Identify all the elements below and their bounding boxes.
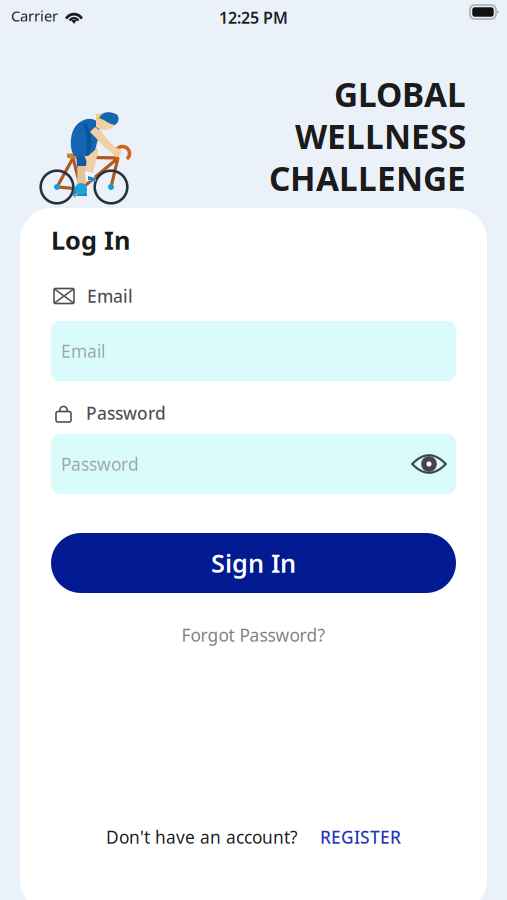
staticText: Don't have an account? [106,825,298,848]
button[interactable]: Sign In [51,533,456,593]
staticText: WELLNESS [295,114,466,158]
staticText: GLOBAL [334,72,466,116]
button[interactable]: REGISTER [298,825,401,848]
staticText: Forgot Password? [181,623,325,646]
staticText: Sign In [211,546,296,580]
staticText: REGISTER [320,825,401,848]
staticText: 12:25 PM [219,7,288,28]
staticText: Email [87,284,133,307]
button[interactable]: Forgot Password? [51,623,456,647]
staticText: Carrier [11,6,58,25]
staticText: CHALLENGE [269,156,466,200]
staticText: Password [61,452,139,475]
staticText: Log In [51,223,130,257]
staticText: Password [86,401,166,424]
button[interactable]: Show password [411,452,456,476]
staticText: Email [61,339,105,362]
